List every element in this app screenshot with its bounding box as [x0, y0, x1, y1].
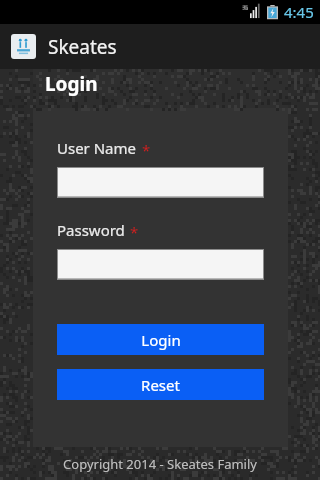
- staticText: User Name: [57, 138, 137, 158]
- staticText: Copyright 2014 - Skeates Family: [63, 455, 257, 473]
- staticText: Skeates: [48, 34, 117, 60]
- staticText: Password: [57, 220, 125, 240]
- staticText: Reset: [141, 375, 180, 395]
- button[interactable]: Skeates: [0, 24, 320, 69]
- staticText: Login: [45, 71, 98, 97]
- staticText: *: [130, 222, 139, 242]
- button[interactable]: Login: [57, 324, 264, 355]
- staticText: *: [142, 140, 151, 160]
- staticText: Login: [141, 330, 181, 350]
- staticText: 4:45: [284, 2, 314, 22]
- button[interactable]: [58, 168, 263, 197]
- button[interactable]: [58, 250, 263, 279]
- button[interactable]: Reset: [57, 369, 264, 400]
